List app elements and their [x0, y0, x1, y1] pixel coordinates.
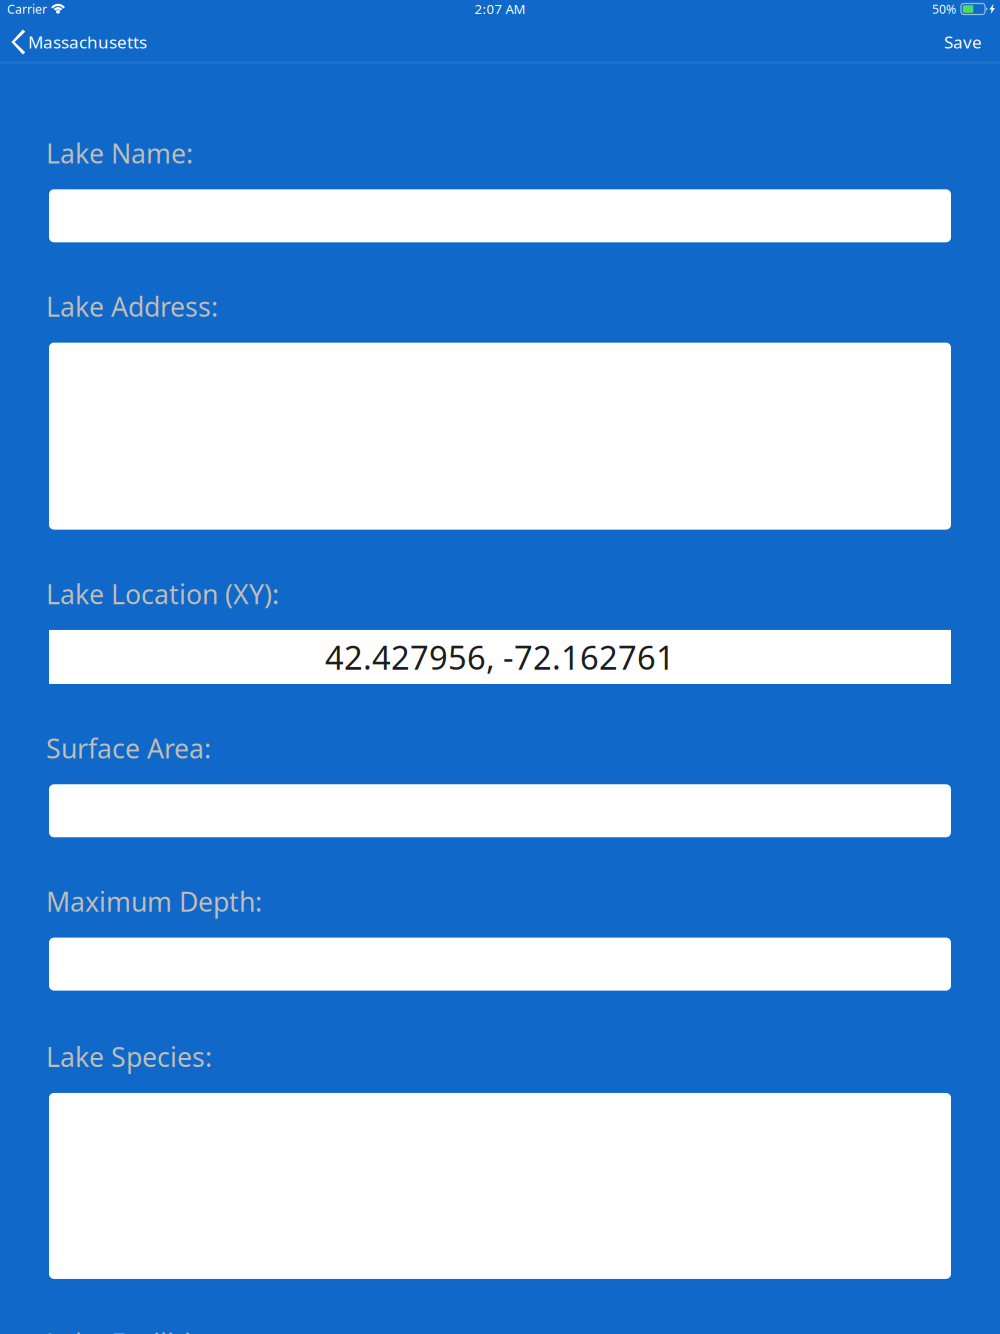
staticText: Save [944, 30, 982, 54]
staticText: Lake Location (XY): [46, 576, 279, 612]
staticText: 50% [932, 1, 956, 17]
staticText: Carrier [7, 1, 47, 17]
button[interactable]: Maximum Depth [49, 938, 951, 991]
staticText: Lake Species: [46, 1039, 212, 1075]
staticText: Lake Name: [46, 135, 193, 171]
button[interactable]: Back to Massachusetts [0, 24, 159, 63]
staticText: Surface Area: [46, 730, 211, 766]
staticText: Massachusetts [28, 30, 147, 54]
staticText: 42.427956, -72.162761 [325, 635, 675, 679]
staticText: Lake Facilities: [46, 1325, 226, 1334]
button[interactable]: Lake Name [49, 189, 951, 242]
button[interactable]: Save [926, 24, 1000, 63]
button[interactable]: Lake Address [49, 343, 951, 530]
button[interactable]: Surface Area [49, 784, 951, 837]
button[interactable]: 42.427956, -72.162761 [49, 630, 951, 684]
staticText: Maximum Depth: [46, 883, 262, 920]
staticText: 2:07 AM [474, 0, 525, 18]
staticText: Lake Address: [46, 288, 218, 325]
